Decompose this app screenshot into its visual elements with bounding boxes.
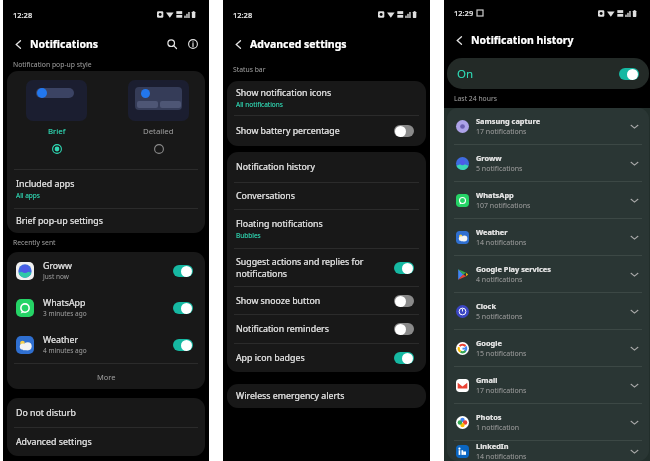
staticText: Clock (476, 301, 496, 311)
staticText: Show snooze button (236, 295, 394, 307)
staticText: Last 24 hours (454, 94, 497, 103)
button[interactable]: On (447, 58, 649, 89)
staticText: Recently sent (13, 238, 56, 247)
staticText: Google (476, 338, 502, 348)
staticText: Notification history (471, 33, 574, 47)
staticText: Bubbles (236, 231, 261, 240)
staticText: Brief (48, 126, 66, 137)
button[interactable]: Brief (26, 80, 87, 154)
staticText: Notifications (30, 37, 99, 51)
staticText: 17 notifications (476, 386, 527, 396)
button[interactable]: About notifications (184, 35, 201, 52)
staticText: Groww (43, 260, 72, 272)
button[interactable]: Wireless emergency alerts (227, 384, 426, 408)
staticText: Included apps (16, 178, 75, 190)
staticText: Show battery percentage (236, 125, 394, 137)
button[interactable]: Off (394, 125, 414, 137)
button[interactable]: Conversations (227, 183, 426, 209)
staticText: Status bar (233, 65, 266, 74)
staticText: Floating notifications (236, 218, 323, 230)
button[interactable]: Weather (7, 326, 205, 363)
button[interactable]: Back (230, 36, 246, 52)
button[interactable]: WhatsApp (7, 289, 205, 326)
button[interactable]: On (394, 352, 414, 364)
staticText: Weather (476, 227, 508, 237)
button[interactable]: Notification reminders (227, 315, 426, 343)
staticText: Notification pop-up style (13, 60, 92, 69)
staticText: 3 minutes ago (43, 309, 87, 318)
staticText: 12:28 (233, 10, 253, 20)
staticText: 1 notification (476, 423, 520, 433)
button[interactable]: WhatsApp (447, 182, 649, 218)
staticText: Do not disturb (16, 407, 76, 419)
staticText: Notification reminders (236, 323, 394, 335)
button[interactable]: Included apps (7, 170, 205, 208)
button[interactable]: Google (447, 330, 649, 366)
staticText: Gmail (476, 375, 498, 385)
button[interactable]: Back (451, 32, 467, 48)
button[interactable]: Brief pop-up settings (7, 209, 205, 233)
button[interactable]: On (619, 68, 639, 80)
staticText: Wireless emergency alerts (236, 390, 345, 402)
staticText: Suggest actions and replies for notifica… (236, 256, 394, 280)
staticText: 4 notifications (476, 275, 523, 285)
staticText: Google Play services (476, 264, 551, 274)
staticText: All notifications (236, 100, 283, 109)
button[interactable]: Samsung capture (447, 108, 649, 144)
staticText: 5 notifications (476, 312, 523, 322)
button[interactable]: Floating notifications (227, 210, 426, 248)
button[interactable]: Groww (7, 252, 205, 289)
button[interactable]: On (394, 262, 414, 274)
button[interactable]: Clock (447, 293, 649, 329)
staticText: 5 notifications (476, 164, 523, 174)
staticText: WhatsApp (476, 190, 514, 200)
staticText: 14 notifications (476, 238, 527, 248)
button[interactable]: App icon badges (227, 344, 426, 372)
staticText: On (457, 66, 619, 82)
staticText: 4 minutes ago (43, 346, 87, 355)
staticText: LinkedIn (476, 441, 509, 451)
button[interactable]: Gmail (447, 367, 649, 403)
button[interactable]: More (7, 364, 205, 389)
staticText: Conversations (236, 190, 295, 202)
button[interactable]: Notification history (227, 152, 426, 182)
staticText: Brief pop-up settings (16, 215, 103, 227)
button[interactable]: On (173, 265, 193, 277)
staticText: 12:28 (13, 10, 33, 20)
button[interactable]: On (173, 302, 193, 314)
button[interactable]: Groww (447, 145, 649, 181)
button[interactable]: Search (163, 35, 180, 52)
button[interactable]: Do not disturb (7, 398, 205, 427)
staticText: Advanced settings (16, 436, 92, 448)
staticText: All apps (16, 191, 40, 200)
staticText: 14 notifications (476, 452, 527, 461)
staticText: 17 notifications (476, 127, 527, 137)
button[interactable]: Off (394, 295, 414, 307)
button[interactable]: LinkedIn (447, 441, 649, 461)
button[interactable]: On (173, 339, 193, 351)
button[interactable]: Suggest actions and replies for notifica… (227, 249, 426, 286)
button[interactable]: Advanced settings (7, 428, 205, 456)
button[interactable]: Weather (447, 219, 649, 255)
button[interactable]: Off (394, 323, 414, 335)
button[interactable]: Show battery percentage (227, 116, 426, 146)
button[interactable]: Photos (447, 404, 649, 440)
staticText: Detailed (143, 126, 174, 137)
button[interactable]: Back (10, 36, 26, 52)
staticText: Just now (43, 272, 69, 281)
button[interactable]: Show snooze button (227, 287, 426, 314)
button[interactable]: Show notification icons (227, 81, 426, 115)
staticText: 107 notifications (476, 201, 531, 211)
staticText: Show notification icons (236, 87, 332, 99)
staticText: Weather (43, 334, 79, 346)
staticText: Advanced settings (250, 37, 347, 51)
staticText: WhatsApp (43, 297, 86, 309)
staticText: 12:29 (454, 8, 474, 18)
staticText: More (97, 372, 116, 382)
button[interactable]: Google Play services (447, 256, 649, 292)
staticText: Groww (476, 153, 502, 163)
staticText: App icon badges (236, 352, 394, 364)
staticText: Samsung capture (476, 116, 541, 126)
staticText: Notification history (236, 161, 315, 173)
button[interactable]: Detailed (128, 80, 189, 154)
